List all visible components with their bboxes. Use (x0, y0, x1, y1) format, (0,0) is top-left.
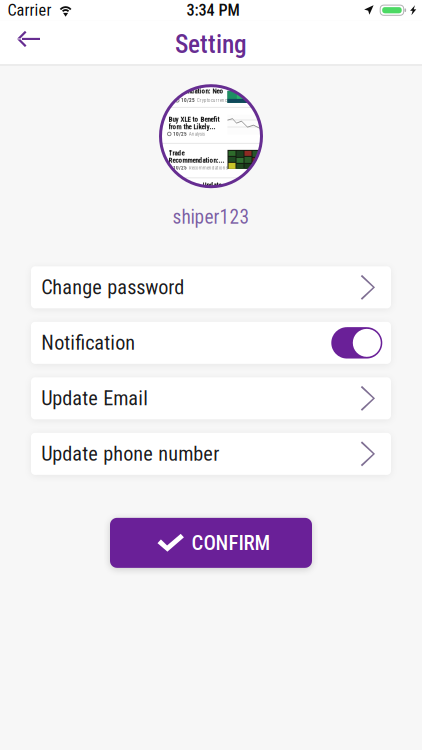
button[interactable]: Notification (31, 322, 391, 364)
staticText: Update Email (41, 386, 148, 410)
staticText: 10/25 (173, 165, 187, 171)
staticText: Buy XLE to Benefit (168, 115, 219, 124)
staticText: endation: Neo (184, 87, 223, 95)
staticText: from the Likely... (168, 123, 215, 131)
button[interactable]: CONFIRM (110, 518, 312, 568)
staticText: Recommendation:... (168, 156, 224, 165)
staticText: 10/25 (173, 131, 187, 137)
button[interactable]: Change password (31, 266, 391, 308)
button[interactable]: Update phone number (31, 433, 391, 475)
staticText: Setting (175, 30, 247, 59)
staticText: shiper123 (172, 206, 249, 228)
staticText: Analysis (189, 131, 205, 137)
staticText: Trade (168, 149, 184, 157)
staticText: CONFIRM (191, 531, 270, 555)
staticText: Recommendations (189, 165, 228, 171)
staticText: 10/25 (181, 97, 195, 103)
staticText: Update phone number (41, 442, 219, 466)
staticText: Carrier (8, 1, 52, 20)
staticText: Update (202, 181, 221, 189)
staticText: 3:34 PM (186, 1, 239, 20)
button[interactable]: Update Email (31, 377, 391, 419)
staticText: Notification (41, 331, 135, 355)
button[interactable]: Back (6, 17, 50, 61)
staticText: Cryptocurrencies (197, 97, 232, 103)
staticText: Change password (41, 275, 184, 299)
